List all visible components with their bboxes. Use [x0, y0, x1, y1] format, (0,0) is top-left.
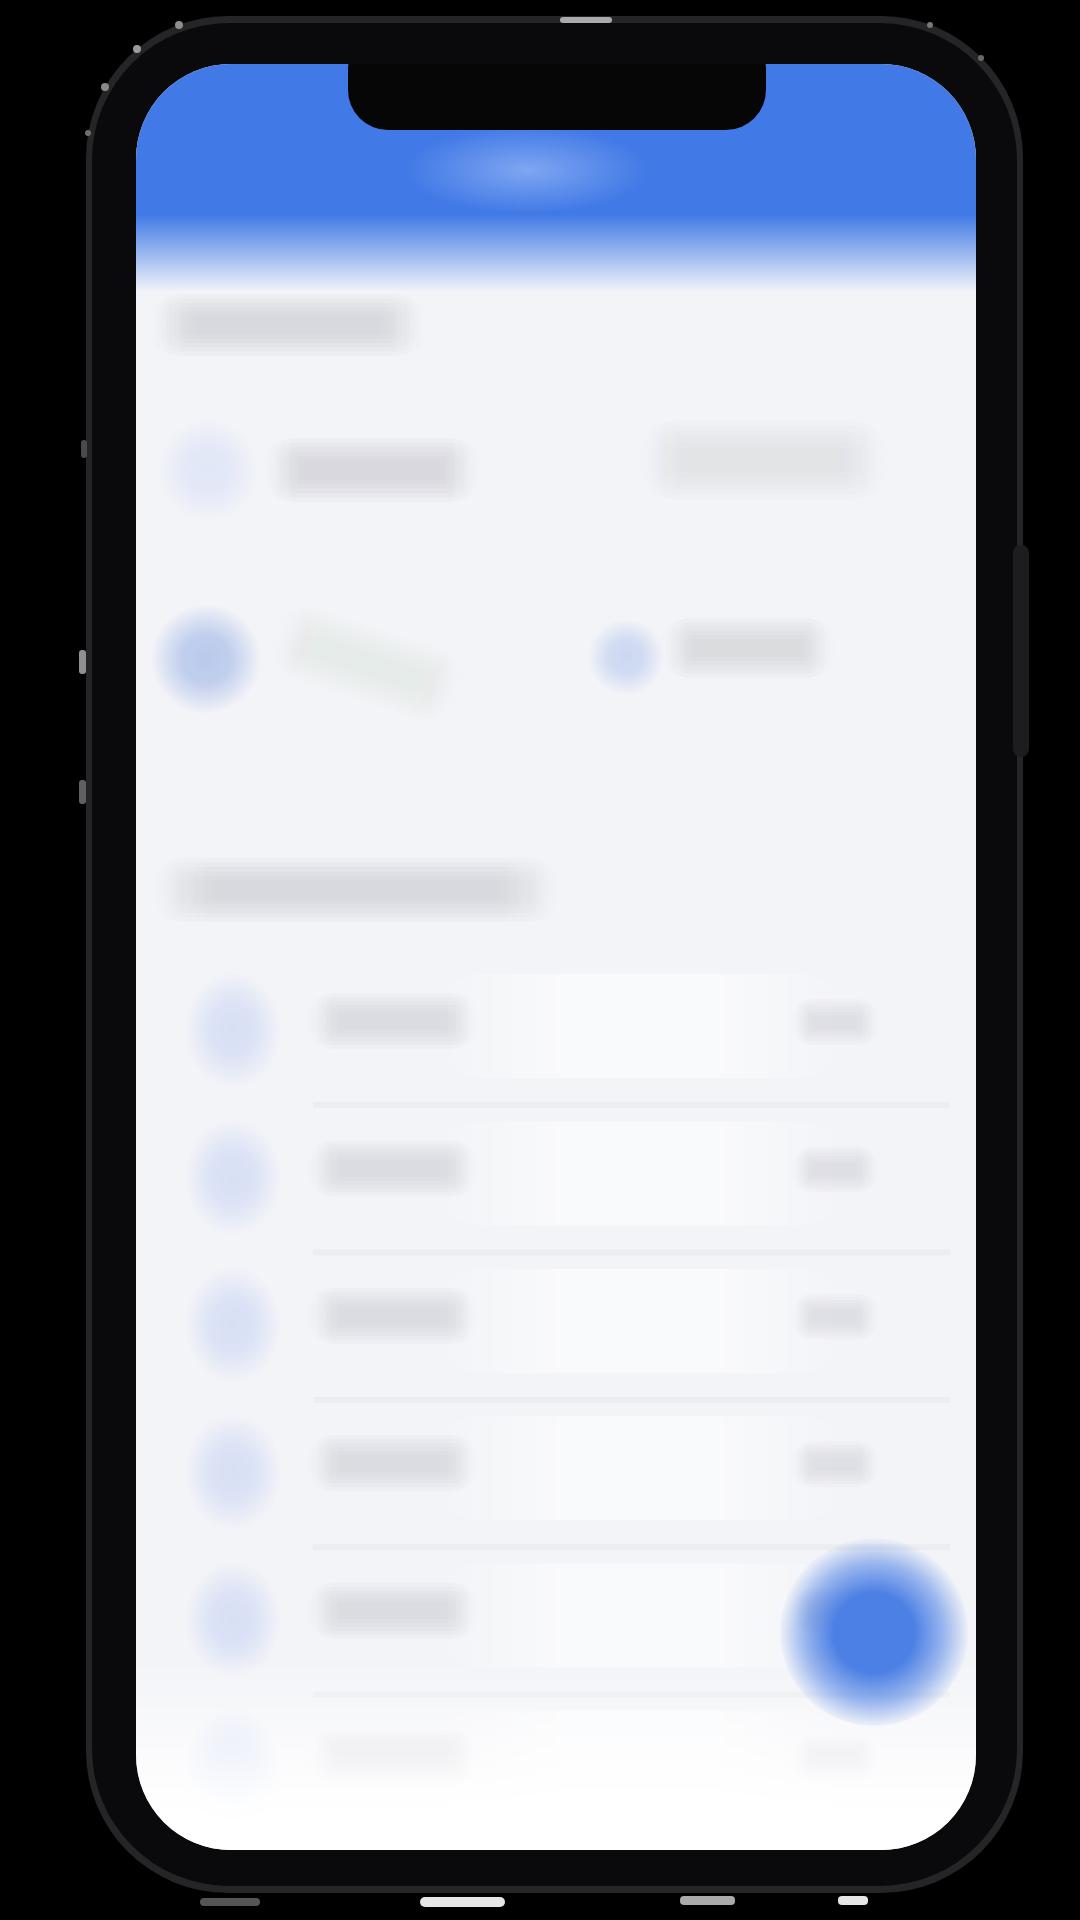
- button[interactable]: [160, 1103, 960, 1243]
- button[interactable]: [160, 1545, 960, 1685]
- button[interactable]: [160, 420, 900, 520]
- button[interactable]: [160, 1693, 960, 1833]
- button[interactable]: [814, 1572, 934, 1692]
- button[interactable]: [580, 610, 900, 710]
- button[interactable]: [160, 956, 960, 1096]
- button[interactable]: [160, 610, 500, 710]
- button[interactable]: [160, 1398, 960, 1538]
- button[interactable]: [160, 1250, 960, 1390]
